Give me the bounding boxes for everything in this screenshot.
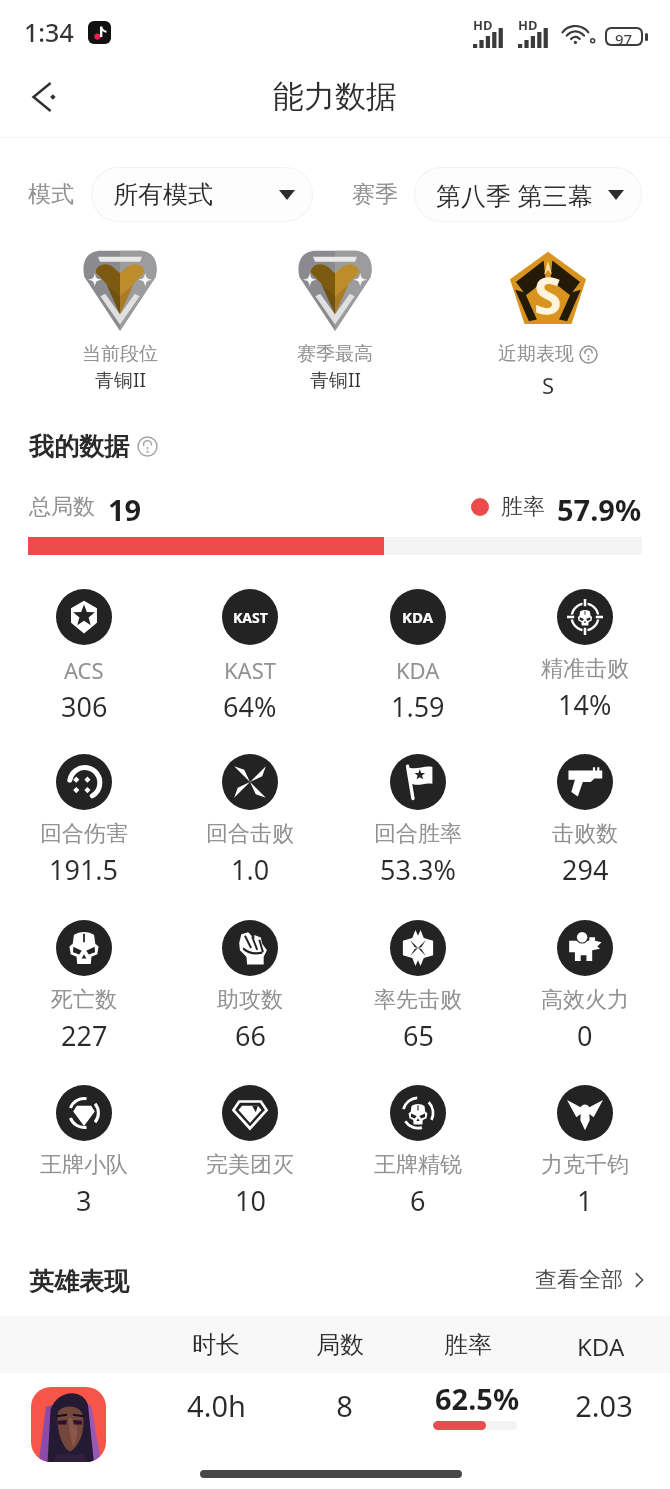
- staticText: 能力数据: [273, 77, 397, 116]
- button[interactable]: 回合伤害: [2, 754, 166, 888]
- staticText: S: [534, 261, 562, 329]
- staticText: 王牌精锐: [374, 1151, 462, 1179]
- button[interactable]: 完美团灭: [168, 1085, 332, 1219]
- staticText: 97: [615, 29, 633, 44]
- staticText: 总局数: [29, 493, 95, 521]
- button[interactable]: 回合击败: [168, 754, 332, 888]
- button[interactable]: KAST: [168, 589, 332, 725]
- staticText: 2.03: [575, 1386, 633, 1425]
- staticText: 4.0h: [187, 1386, 246, 1425]
- staticText: 65: [403, 1017, 434, 1054]
- staticText: ACS: [64, 655, 104, 685]
- staticText: 精准击败: [541, 655, 629, 683]
- button[interactable]: 王牌小队: [2, 1085, 166, 1219]
- staticText: 击败数: [552, 820, 618, 848]
- staticText: 19: [108, 490, 142, 524]
- staticText: 局数: [316, 1330, 364, 1360]
- button[interactable]: 所有模式: [92, 168, 312, 221]
- staticText: HD: [518, 16, 538, 34]
- staticText: 模式: [28, 180, 74, 209]
- staticText: 死亡数: [51, 986, 117, 1014]
- button[interactable]: 王牌精锐: [336, 1085, 500, 1219]
- staticText: 66: [235, 1017, 266, 1054]
- staticText: 时长: [192, 1330, 240, 1360]
- staticText: KAST: [233, 608, 268, 627]
- staticText: 57.9%: [557, 490, 642, 524]
- button[interactable]: 助攻数: [168, 920, 332, 1054]
- button[interactable]: ACS: [2, 589, 166, 725]
- staticText: KDA: [396, 655, 440, 685]
- staticText: 0: [577, 1017, 593, 1054]
- staticText: S: [542, 370, 555, 400]
- staticText: 回合伤害: [40, 820, 128, 848]
- button[interactable]: 精准击败: [503, 589, 667, 723]
- staticText: 3: [76, 1182, 92, 1219]
- staticText: 6: [410, 1182, 426, 1219]
- staticText: 1.59: [391, 688, 445, 725]
- button[interactable]: [0, 1373, 670, 1477]
- staticText: 查看全部: [535, 1266, 623, 1294]
- button[interactable]: 查看全部: [535, 1266, 648, 1294]
- staticText: 近期表现: [498, 342, 574, 366]
- staticText: 53.3%: [380, 851, 457, 888]
- staticText: 胜率: [501, 493, 545, 521]
- staticText: KDA: [577, 1330, 625, 1363]
- staticText: 青铜II: [95, 367, 146, 393]
- staticText: 当前段位: [82, 342, 158, 366]
- staticText: 赛季最高: [297, 342, 373, 366]
- staticText: 胜率: [444, 1330, 492, 1360]
- staticText: 回合击败: [206, 820, 294, 848]
- staticText: 294: [562, 851, 609, 888]
- staticText: 率先击败: [374, 986, 462, 1014]
- button[interactable]: 回合胜率: [336, 754, 500, 888]
- staticText: 所有模式: [113, 179, 213, 210]
- button[interactable]: 第八季 第三幕: [415, 168, 641, 221]
- staticText: 赛季: [352, 180, 398, 209]
- staticText: 1.0: [231, 851, 270, 888]
- staticText: 306: [61, 688, 108, 725]
- staticText: 回合胜率: [374, 820, 462, 848]
- staticText: 1:34: [24, 15, 74, 49]
- staticText: 力克千钧: [541, 1151, 629, 1179]
- staticText: KAST: [224, 655, 276, 685]
- staticText: 1: [577, 1182, 593, 1219]
- staticText: 10: [235, 1182, 266, 1219]
- staticText: 227: [61, 1017, 108, 1054]
- staticText: 完美团灭: [206, 1151, 294, 1179]
- button[interactable]: 击败数: [503, 754, 667, 888]
- staticText: 62.5%: [435, 1379, 520, 1418]
- button[interactable]: KDA: [336, 589, 500, 725]
- staticText: 14%: [558, 686, 612, 723]
- staticText: 青铜II: [310, 367, 361, 393]
- button[interactable]: 高效火力: [503, 920, 667, 1054]
- staticText: 64%: [223, 688, 277, 725]
- staticText: 高效火力: [541, 986, 629, 1014]
- staticText: 我的数据: [29, 431, 129, 462]
- staticText: KDA: [402, 607, 434, 627]
- button[interactable]: 死亡数: [2, 920, 166, 1054]
- button[interactable]: 率先击败: [336, 920, 500, 1054]
- staticText: 英雄表现: [29, 1266, 129, 1297]
- button[interactable]: Back: [14, 68, 72, 126]
- staticText: 助攻数: [217, 986, 283, 1014]
- button[interactable]: 力克千钧: [503, 1085, 667, 1219]
- staticText: 王牌小队: [40, 1151, 128, 1179]
- staticText: 191.5: [49, 851, 119, 888]
- staticText: 8: [336, 1386, 353, 1425]
- staticText: HD: [473, 16, 493, 34]
- staticText: 第八季 第三幕: [436, 178, 593, 212]
